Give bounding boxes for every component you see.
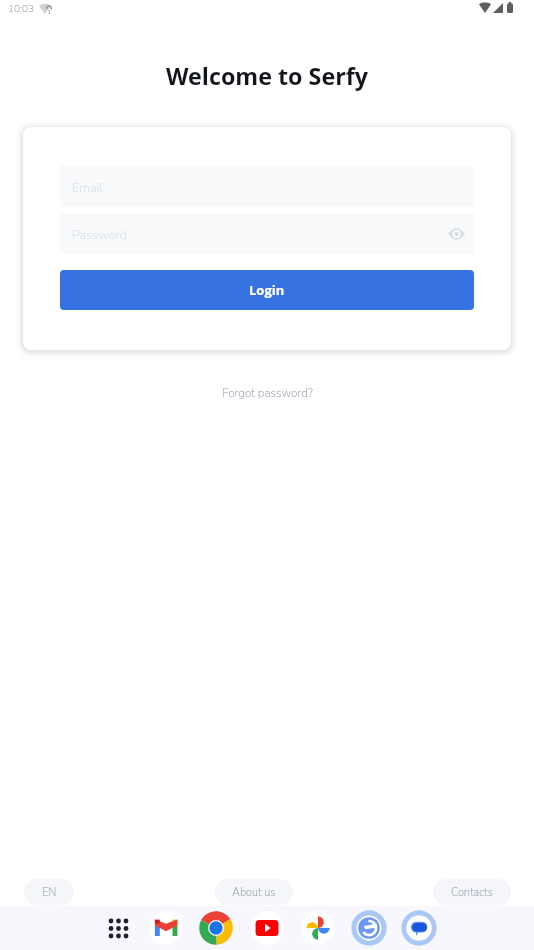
staticText: EN bbox=[42, 885, 57, 900]
button[interactable]: EN bbox=[24, 879, 74, 905]
button[interactable]: About us bbox=[215, 879, 293, 905]
button[interactable]: Gmail bbox=[148, 910, 184, 946]
staticText: Welcome to Serfy bbox=[0, 60, 534, 92]
button[interactable]: Chrome bbox=[198, 910, 234, 946]
staticText: About us bbox=[232, 885, 276, 900]
button[interactable]: Messages bbox=[401, 910, 437, 946]
button[interactable]: Edge bbox=[351, 910, 387, 946]
staticText: Login bbox=[249, 281, 285, 299]
other: Wi-Fi unavailable bbox=[39, 4, 52, 14]
button[interactable]: Forgot password? bbox=[222, 385, 313, 401]
button[interactable]: Contacts bbox=[433, 879, 511, 905]
button[interactable]: Login bbox=[60, 270, 474, 310]
button[interactable]: YouTube bbox=[249, 910, 285, 946]
staticText: Email bbox=[72, 179, 103, 196]
staticText: Contacts bbox=[451, 885, 493, 900]
button[interactable]: All apps bbox=[104, 914, 133, 943]
staticText: 10:03 bbox=[8, 2, 35, 16]
staticText: Password bbox=[72, 226, 128, 243]
button[interactable]: Show password bbox=[448, 228, 465, 240]
button[interactable]: Photos bbox=[300, 910, 336, 946]
